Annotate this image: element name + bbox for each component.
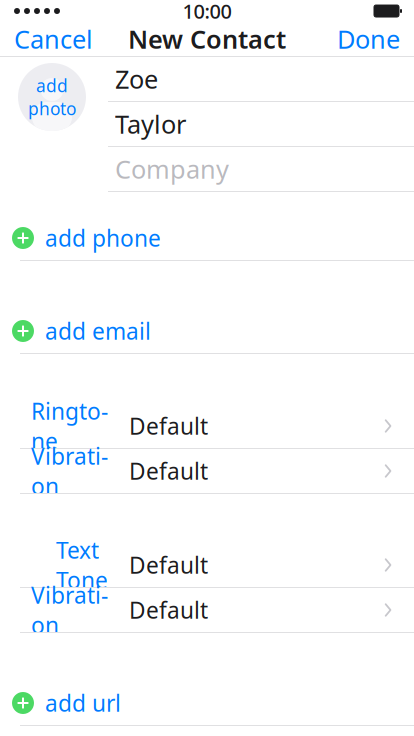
staticText: Zoe: [115, 62, 158, 96]
staticText: Default: [129, 456, 208, 486]
staticText: add phone: [45, 223, 161, 253]
staticText: Done: [337, 22, 400, 56]
button[interactable]: Ringtone: [0, 404, 414, 448]
button[interactable]: Vibration: [0, 588, 414, 632]
staticText: Default: [129, 595, 208, 625]
staticText: Taylor: [115, 107, 186, 141]
button[interactable]: Done: [323, 16, 414, 62]
button[interactable]: add phone: [0, 216, 414, 260]
staticText: add url: [45, 688, 121, 718]
button[interactable]: add url: [0, 681, 414, 725]
button[interactable]: Vibration: [0, 449, 414, 493]
staticText: Cancel: [14, 22, 93, 56]
staticText: Default: [129, 550, 208, 580]
button[interactable]: Add photo: [18, 63, 86, 131]
staticText: Default: [129, 411, 208, 441]
button[interactable]: Cancel: [0, 16, 107, 62]
staticText: 10:00: [182, 0, 231, 24]
staticText: Vibration: [31, 441, 108, 501]
button[interactable]: add email: [0, 309, 414, 353]
staticText: photo: [28, 97, 76, 120]
staticText: add: [36, 74, 68, 97]
button[interactable]: Text Tone: [0, 543, 414, 587]
staticText: New Contact: [128, 22, 286, 56]
staticText: Company: [115, 152, 229, 186]
staticText: Ringtone: [31, 396, 108, 456]
staticText: add email: [45, 316, 151, 346]
staticText: Text Tone: [56, 535, 108, 595]
staticText: Vibration: [31, 580, 108, 640]
